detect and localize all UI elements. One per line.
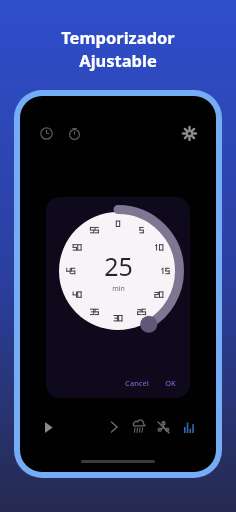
- button[interactable]: Play: [38, 417, 58, 437]
- button[interactable]: OK: [161, 376, 180, 390]
- staticText: OK: [165, 378, 176, 388]
- button[interactable]: Mute fan: [152, 416, 174, 438]
- staticText: min: [112, 284, 125, 294]
- staticText: Cancel: [125, 378, 149, 388]
- button[interactable]: Equalizer: [178, 416, 200, 438]
- button[interactable]: Stopwatch: [64, 123, 84, 143]
- staticText: Ajustable: [79, 49, 157, 71]
- button[interactable]: Cancel: [121, 376, 153, 390]
- button[interactable]: Rain sound: [128, 416, 150, 438]
- button[interactable]: Settings: [178, 122, 200, 144]
- staticText: Temporizador: [61, 26, 175, 48]
- button[interactable]: Next: [104, 417, 124, 437]
- staticText: 25: [104, 249, 133, 283]
- button[interactable]: Alarm: [36, 123, 56, 143]
